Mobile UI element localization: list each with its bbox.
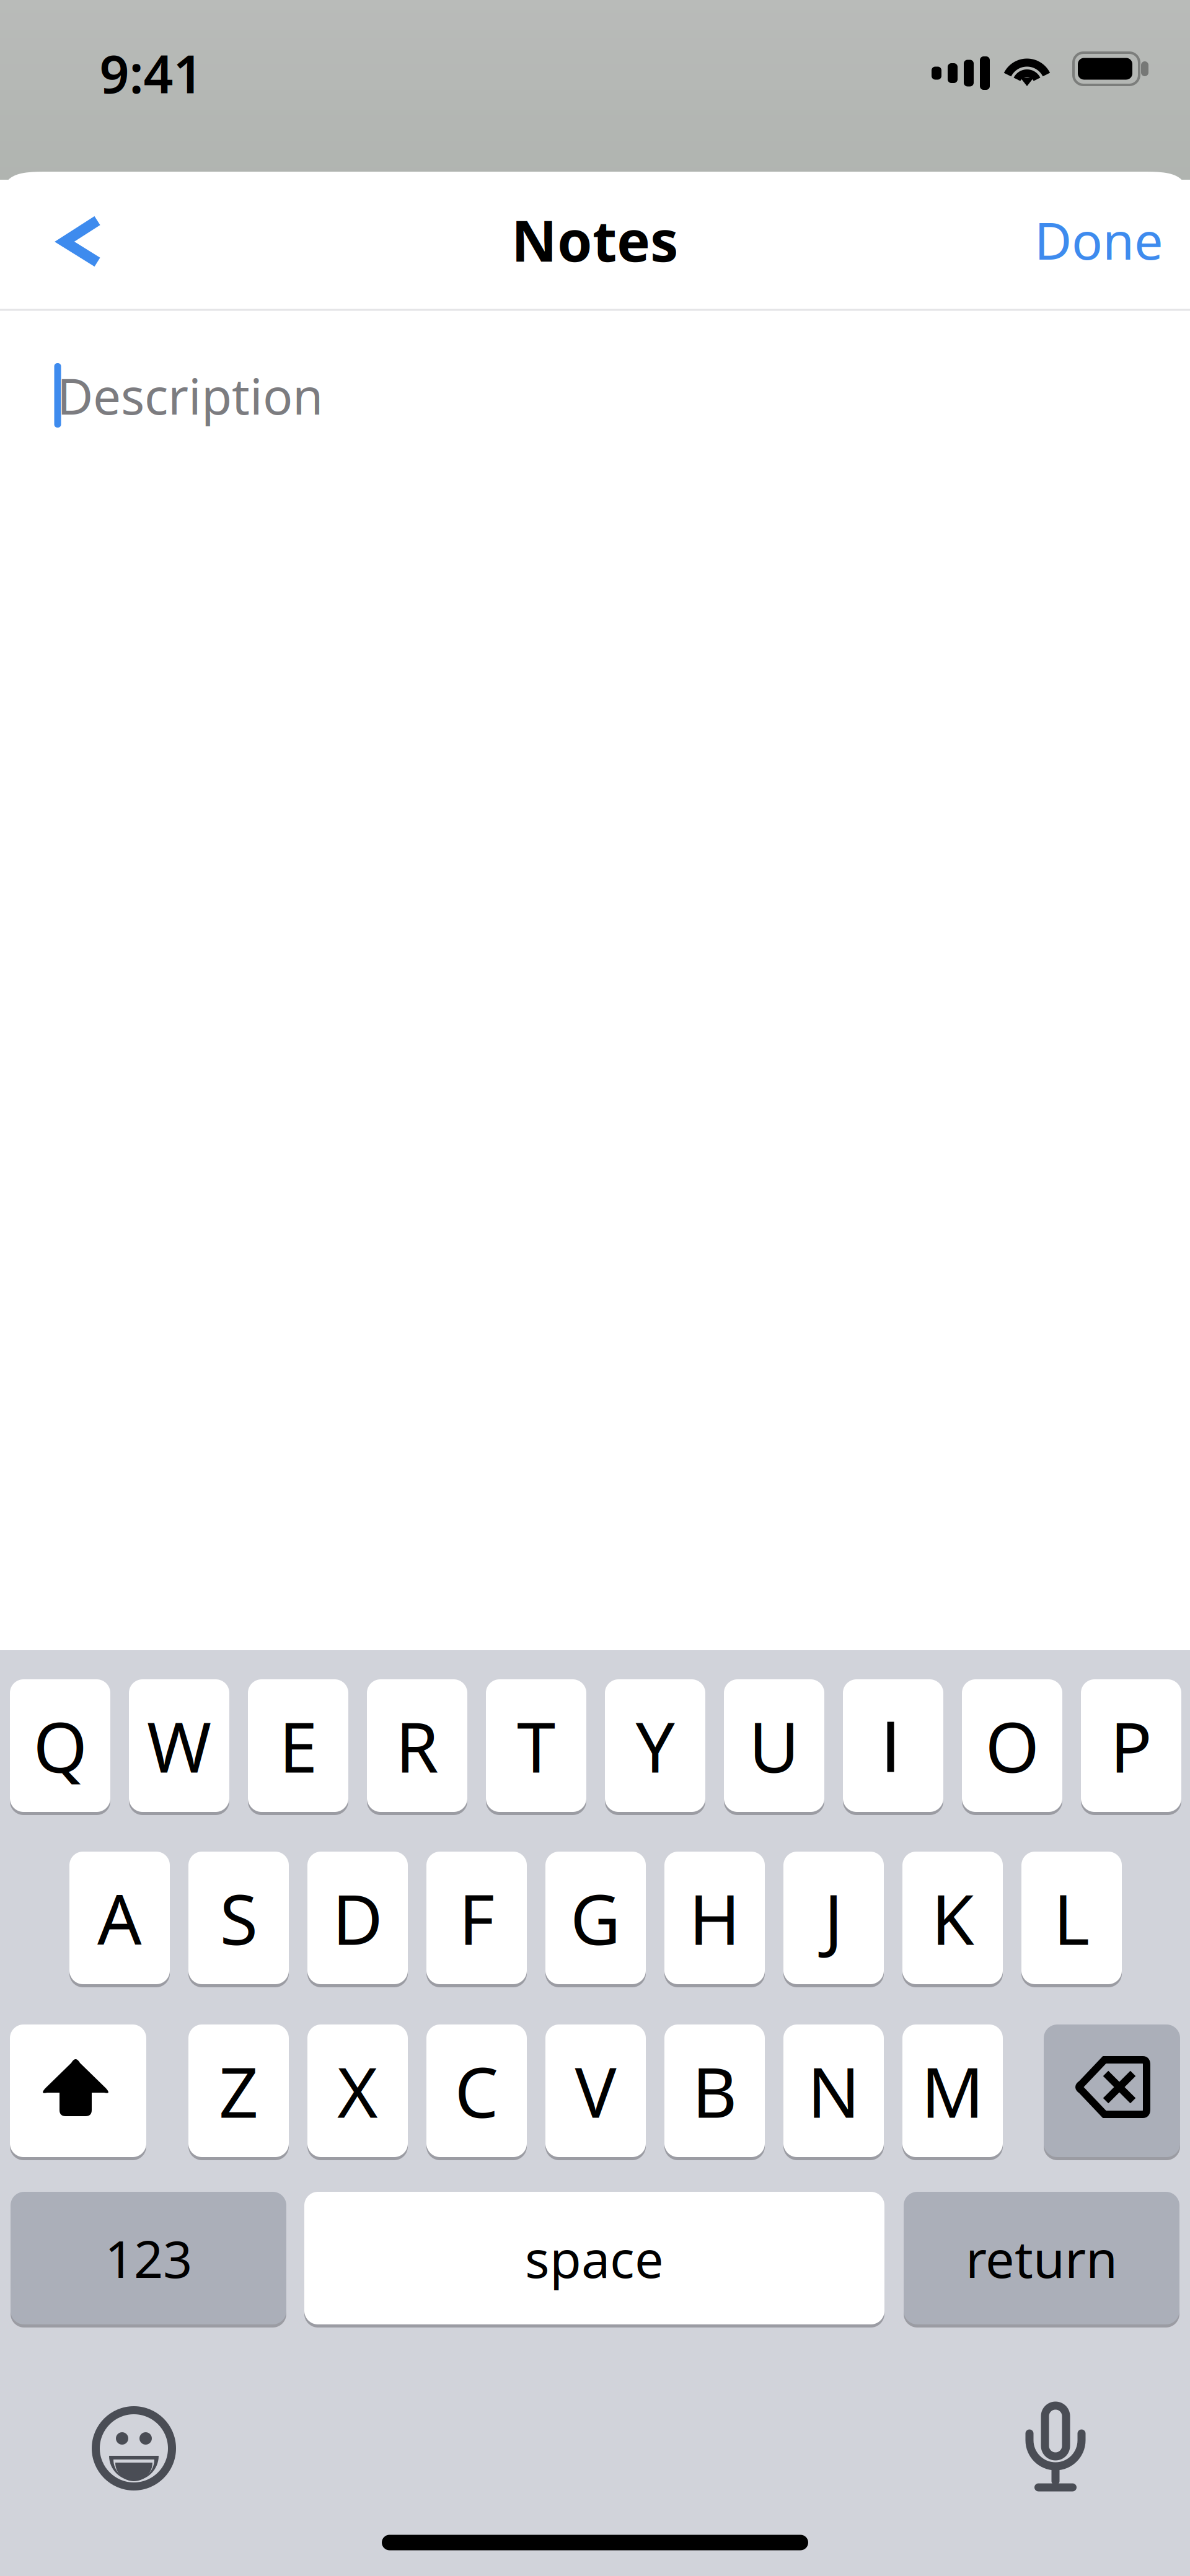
staticText: H [689, 1872, 740, 1964]
staticText: W [147, 1700, 211, 1792]
staticText: A [97, 1872, 142, 1964]
staticText: O [985, 1700, 1039, 1792]
staticText: G [570, 1872, 621, 1964]
button[interactable]: G [545, 1852, 646, 1992]
staticText: K [931, 1872, 974, 1964]
staticText: U [749, 1700, 800, 1792]
button[interactable]: Delete [1044, 2024, 1180, 2165]
button[interactable]: return [904, 2192, 1179, 2332]
staticText: Z [219, 2045, 258, 2137]
button[interactable]: F [426, 1852, 527, 1992]
staticText: P [1110, 1700, 1152, 1792]
staticText: L [1053, 1872, 1090, 1964]
staticText: return [966, 2224, 1117, 2292]
button[interactable]: O [962, 1679, 1062, 1819]
staticText: Description [57, 362, 323, 428]
button[interactable]: W [129, 1679, 229, 1819]
button[interactable]: Done [1006, 196, 1190, 283]
staticText: 9:41 [99, 39, 203, 108]
button[interactable]: Emoji keyboard [78, 2393, 190, 2504]
button[interactable]: V [545, 2024, 646, 2165]
staticText: Notes [511, 203, 679, 277]
button[interactable]: C [426, 2024, 527, 2165]
button[interactable]: J [783, 1852, 884, 1992]
button[interactable]: 123 [11, 2192, 286, 2332]
staticText: M [921, 2045, 984, 2137]
button[interactable]: Z [188, 2024, 289, 2165]
button[interactable]: Dictation [1006, 2393, 1105, 2499]
button[interactable]: Y [605, 1679, 705, 1819]
button[interactable]: space [304, 2192, 884, 2332]
staticText: N [807, 2045, 860, 2137]
button[interactable]: Q [10, 1679, 110, 1819]
button[interactable]: N [783, 2024, 884, 2165]
button[interactable] [843, 1679, 943, 1819]
staticText: Q [33, 1700, 87, 1792]
button[interactable]: Back [27, 183, 145, 301]
staticText: T [517, 1700, 555, 1792]
staticText: B [692, 2045, 737, 2137]
button[interactable]: E [248, 1679, 348, 1819]
staticText: E [279, 1700, 317, 1792]
button[interactable]: H [664, 1852, 765, 1992]
button[interactable]: L [1021, 1852, 1122, 1992]
staticText: D [332, 1872, 383, 1964]
staticText: F [459, 1872, 495, 1964]
staticText: Y [636, 1700, 675, 1792]
button[interactable]: U [724, 1679, 824, 1819]
staticText: J [824, 1872, 843, 1964]
button[interactable]: X [307, 2024, 408, 2165]
staticText: 123 [105, 2224, 192, 2292]
button[interactable]: D [307, 1852, 408, 1992]
staticText: Done [1034, 206, 1163, 274]
button[interactable]: B [664, 2024, 765, 2165]
staticText: V [575, 2045, 616, 2137]
staticText: space [525, 2224, 664, 2292]
button[interactable]: R [367, 1679, 467, 1819]
button[interactable]: A [69, 1852, 170, 1992]
button[interactable]: K [902, 1852, 1003, 1992]
staticText: S [220, 1872, 258, 1964]
button[interactable]: S [188, 1852, 289, 1992]
staticText: C [455, 2045, 499, 2137]
button[interactable]: T [486, 1679, 586, 1819]
button[interactable]: P [1081, 1679, 1181, 1819]
staticText: R [395, 1700, 439, 1792]
staticText: X [337, 2045, 378, 2137]
button[interactable]: M [902, 2024, 1003, 2165]
button[interactable]: Shift [10, 2024, 146, 2165]
